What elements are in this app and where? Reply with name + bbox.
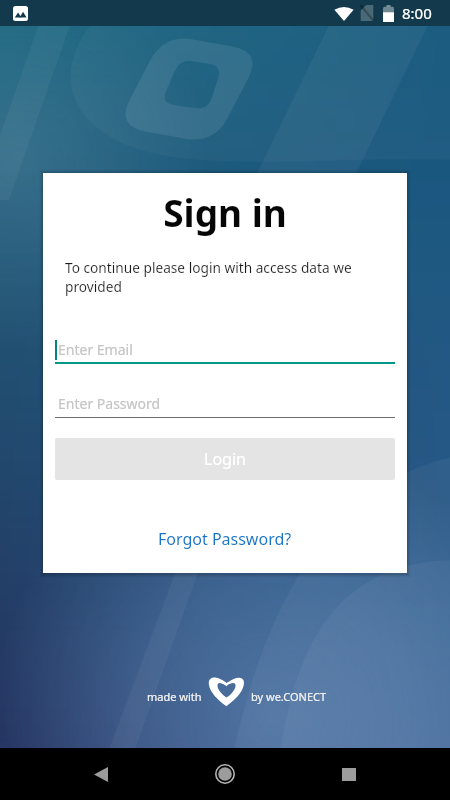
staticText: made with [147, 689, 202, 704]
staticText: PHARMA [159, 163, 292, 202]
button[interactable]: Forgot Password? [148, 525, 302, 553]
button[interactable]: Enter Email [55, 335, 395, 364]
staticText: Enter Password [58, 394, 161, 413]
staticText: by we.CONECT [251, 689, 327, 704]
staticText: Enter Email [58, 340, 133, 359]
staticText: 8:00 [402, 3, 432, 23]
staticText: To continue please login with access dat… [65, 258, 385, 296]
button[interactable]: Recent apps [314, 748, 384, 800]
staticText: Login [204, 448, 246, 470]
button[interactable]: Enter Password [55, 389, 395, 418]
button[interactable]: Home [190, 748, 260, 800]
staticText: Sign in [43, 187, 407, 237]
button[interactable]: Back [66, 748, 136, 800]
staticText: Forgot Password? [158, 528, 292, 550]
